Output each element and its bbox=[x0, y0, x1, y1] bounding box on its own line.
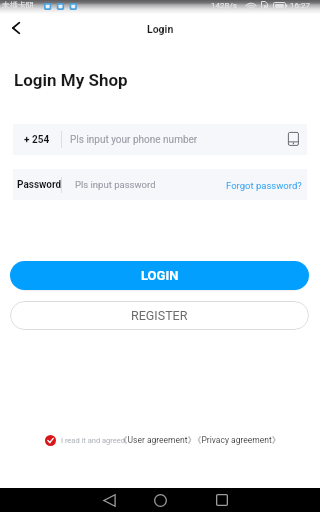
button[interactable]: Back bbox=[94, 489, 124, 511]
button[interactable]: LOGIN bbox=[10, 261, 309, 290]
button[interactable]: Back bbox=[1, 13, 31, 43]
staticText: + 254 bbox=[24, 134, 50, 146]
button[interactable]: Forgot password? bbox=[221, 175, 307, 196]
staticText: REGISTER bbox=[131, 308, 188, 323]
staticText: Password bbox=[17, 179, 62, 191]
staticText: LOGIN bbox=[141, 268, 179, 283]
button[interactable]: Pick contact bbox=[285, 130, 303, 148]
button[interactable]: 《Privacy agreement》 bbox=[193, 435, 281, 446]
button[interactable]: Password bbox=[13, 169, 307, 200]
staticText: Login My Shop bbox=[14, 70, 128, 90]
staticText: 142B/s bbox=[211, 1, 237, 10]
button[interactable]: 《User agreement》 bbox=[119, 435, 197, 446]
button[interactable]: Home bbox=[145, 489, 175, 511]
button[interactable]: Agree to terms bbox=[45, 435, 56, 446]
staticText: 未插卡阴 bbox=[2, 0, 34, 10]
button[interactable]: REGISTER bbox=[10, 301, 309, 330]
staticText: Pls input password bbox=[75, 179, 156, 190]
button[interactable]: Recent apps bbox=[207, 489, 237, 511]
button[interactable]: + 254 bbox=[13, 124, 307, 155]
staticText: Login bbox=[147, 23, 174, 35]
staticText: Pls input your phone number bbox=[70, 134, 198, 146]
staticText: 16:27 bbox=[290, 1, 310, 10]
staticText: I read it and agreed bbox=[61, 436, 125, 445]
